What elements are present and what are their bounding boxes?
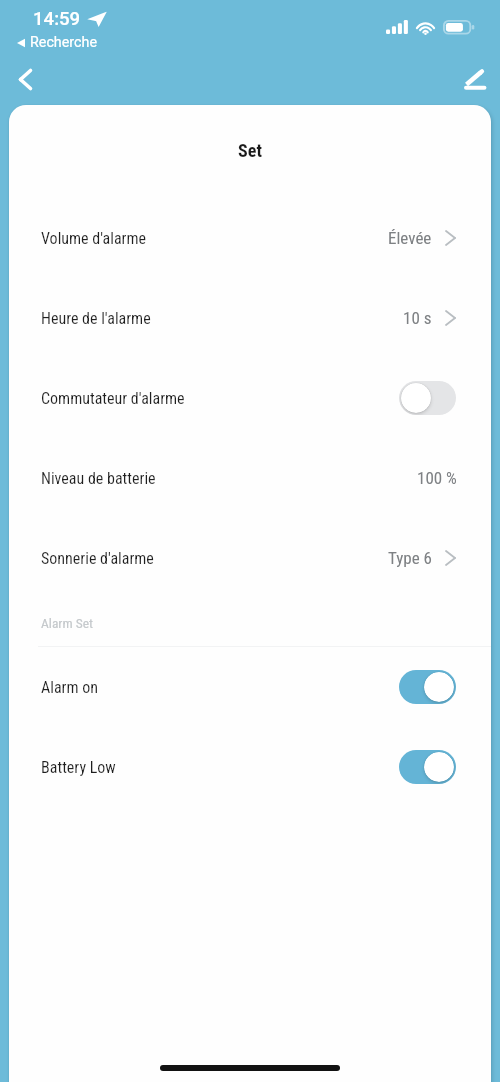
button[interactable]: Toggle on [399,670,456,704]
staticText: Niveau de batterie [41,469,156,488]
staticText: Type 6 [388,548,432,568]
staticText: 100 % [417,468,457,488]
button[interactable]: Heure de l'alarme [9,278,491,358]
button[interactable]: Volume d'alarme [9,198,491,278]
staticText: Volume d'alarme [41,229,147,248]
staticText: 14:59 [33,8,81,30]
button[interactable]: Sonnerie d'alarme [9,518,491,598]
button[interactable]: Battery Low [9,727,491,807]
staticText: Heure de l'alarme [41,309,151,328]
staticText: Commutateur d'alarme [41,389,185,408]
staticText: Battery Low [41,758,116,777]
button[interactable]: Edit [453,56,496,99]
staticText: 10 s [403,308,432,328]
staticText: Alarm on [41,678,98,697]
button[interactable]: Back [4,58,47,101]
staticText: Recherche [30,34,97,51]
button[interactable]: Toggle on [399,750,456,784]
button[interactable]: Toggle off [399,381,456,415]
button[interactable]: Commutateur d'alarme [9,358,491,438]
button[interactable]: Alarm on [9,647,491,727]
staticText: Alarm Set [41,615,94,631]
staticText: Élevée [388,228,432,248]
staticText: Set [9,140,491,161]
staticText: Sonnerie d'alarme [41,549,154,568]
button[interactable]: Recherche [12,29,103,56]
button[interactable]: Niveau de batterie [9,438,491,518]
